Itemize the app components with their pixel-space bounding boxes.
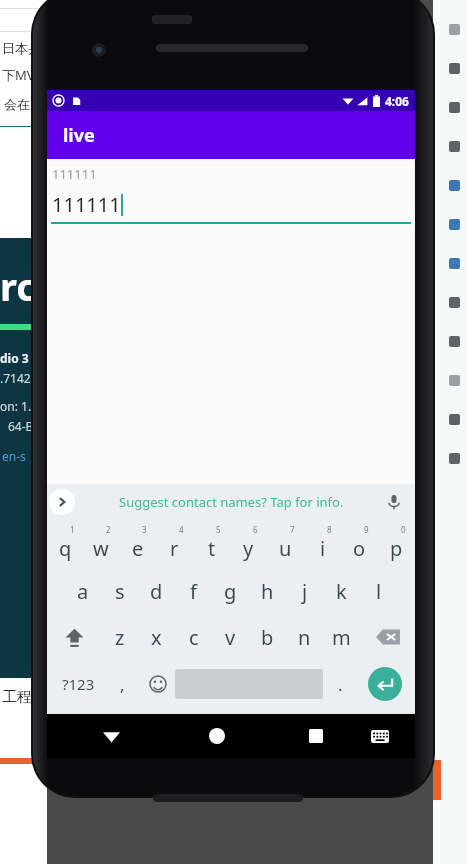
button[interactable]: k: [323, 568, 360, 614]
staticText: 111111: [52, 191, 121, 218]
staticText: p: [390, 535, 403, 562]
staticText: x: [151, 624, 162, 651]
staticText: Suggest contact names? Tap for info.: [119, 493, 344, 511]
staticText: dio 3: [0, 350, 29, 366]
button[interactable]: Shift: [47, 614, 101, 660]
staticText: r: [170, 535, 179, 562]
button[interactable]: Back: [92, 717, 130, 755]
staticText: 0: [401, 524, 406, 535]
staticText: 8: [327, 524, 332, 535]
staticText: q: [59, 535, 72, 562]
staticText: n: [298, 624, 311, 651]
staticText: live: [63, 123, 95, 148]
staticText: f: [190, 578, 197, 605]
button[interactable]: x: [138, 614, 175, 660]
staticText: .7142: [0, 370, 31, 386]
button[interactable]: Suggest contact names? Tap for info.: [119, 493, 344, 511]
button[interactable]: 7: [267, 522, 304, 568]
staticText: y: [243, 535, 254, 562]
button[interactable]: 2: [83, 522, 119, 568]
staticText: e: [132, 535, 144, 562]
staticText: d: [150, 578, 163, 605]
staticText: 工程: [2, 688, 32, 707]
staticText: 5: [216, 524, 221, 535]
staticText: 6: [253, 524, 258, 535]
button[interactable]: m: [323, 614, 360, 660]
staticText: w: [93, 535, 109, 562]
button[interactable]: Recents: [297, 717, 335, 755]
button[interactable]: 4: [156, 522, 193, 568]
button[interactable]: n: [286, 614, 323, 660]
button[interactable]: z: [101, 614, 138, 660]
staticText: 4:06: [385, 93, 409, 109]
staticText: g: [224, 578, 237, 605]
staticText: 9: [364, 524, 369, 535]
button[interactable]: 1: [47, 522, 83, 568]
staticText: 7: [290, 524, 295, 535]
staticText: 3: [142, 524, 147, 535]
staticText: ,: [120, 673, 125, 696]
button[interactable]: Enter: [368, 667, 402, 701]
button[interactable]: v: [212, 614, 249, 660]
button[interactable]: b: [249, 614, 286, 660]
staticText: 会在: [4, 96, 30, 112]
staticText: .: [338, 673, 343, 696]
staticText: 1: [70, 524, 75, 535]
button[interactable]: h: [249, 568, 286, 614]
staticText: t: [208, 535, 216, 562]
button[interactable]: Voice input: [383, 491, 405, 513]
staticText: ?123: [62, 674, 95, 694]
staticText: v: [225, 624, 236, 651]
staticText: h: [261, 578, 274, 605]
button[interactable]: 6: [230, 522, 267, 568]
staticText: c: [189, 624, 199, 651]
button[interactable]: 9: [341, 522, 378, 568]
button[interactable]: j: [286, 568, 323, 614]
staticText: j: [302, 578, 308, 605]
button[interactable]: a: [65, 568, 101, 614]
button[interactable]: ,: [105, 660, 140, 708]
button[interactable]: f: [175, 568, 212, 614]
staticText: k: [336, 578, 347, 605]
staticText: s: [115, 578, 125, 605]
staticText: u: [279, 535, 292, 562]
button[interactable]: 8: [304, 522, 341, 568]
button[interactable]: c: [175, 614, 212, 660]
button[interactable]: Backspace: [360, 614, 415, 660]
staticText: a: [77, 578, 89, 605]
button[interactable]: d: [138, 568, 175, 614]
button[interactable]: l: [360, 568, 397, 614]
staticText: 64-B: [8, 418, 34, 434]
staticText: on: 1.: [0, 398, 32, 414]
button[interactable]: Emoji: [140, 660, 175, 708]
staticText: rc: [0, 260, 36, 312]
staticText: i: [320, 535, 326, 562]
button[interactable]: ?123: [51, 660, 105, 708]
button[interactable]: Expand suggestions: [49, 489, 75, 515]
staticText: 4: [179, 524, 184, 535]
staticText: m: [332, 624, 351, 651]
staticText: 日本身: [2, 40, 41, 56]
button[interactable]: 3: [119, 522, 156, 568]
button[interactable]: 0: [378, 522, 415, 568]
staticText: o: [353, 535, 366, 562]
button[interactable]: Keyboard switcher: [363, 719, 397, 753]
button[interactable]: g: [212, 568, 249, 614]
staticText: 111111: [52, 165, 97, 183]
staticText: 2: [106, 524, 111, 535]
staticText: b: [261, 624, 274, 651]
staticText: z: [115, 624, 125, 651]
staticText: en-s: [2, 448, 26, 464]
staticText: 下MV: [2, 66, 35, 84]
button[interactable]: s: [101, 568, 138, 614]
button[interactable]: 5: [193, 522, 230, 568]
staticText: l: [376, 578, 382, 605]
button[interactable]: .: [323, 660, 358, 708]
button[interactable]: Home: [198, 717, 236, 755]
